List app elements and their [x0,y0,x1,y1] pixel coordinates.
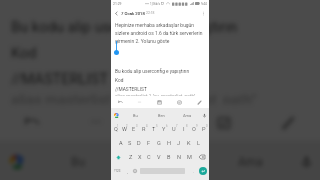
button[interactable]: Draw [189,96,209,108]
staticText: P [202,126,206,133]
button[interactable]: Save [149,96,169,108]
staticText: A [119,140,123,147]
staticText: U [172,126,176,133]
staticText: Kod [11,44,37,61]
staticText: 8 [186,125,188,128]
staticText: Ama [238,155,263,169]
button[interactable]: Ben [148,108,174,122]
staticText: O [192,126,196,133]
button[interactable]: Checklist [169,96,189,108]
staticText: 7 Ocak 2018 [121,11,145,16]
staticText: 0 [206,125,208,128]
staticText: Bu [133,113,138,118]
button[interactable]: Emoji [131,164,139,178]
button[interactable]: Voice input [200,108,209,122]
button[interactable]: W [120,122,129,136]
button[interactable]: Backspace [194,150,209,164]
staticText: //MASTERLIST [115,87,147,93]
button[interactable]: R [139,122,149,136]
staticText: N [177,154,181,161]
staticText: T [152,126,156,133]
staticText: Bu kodu alip userconfig e yapıştırın [11,18,238,35]
staticText: 3 [136,125,138,128]
button[interactable]: N [174,150,184,164]
button[interactable]: More options [199,9,208,18]
button[interactable]: L [194,136,204,150]
staticText: Bu kodu alip userconfig e yapıştırın [115,69,190,75]
button[interactable]: P [199,122,209,136]
staticText: X [138,154,142,161]
button[interactable]: C [144,150,154,164]
button[interactable]: Bu [122,108,148,122]
staticText: Ama [183,113,192,118]
staticText: H [167,140,171,147]
button[interactable]: Q [111,122,120,136]
staticText: K [187,140,191,147]
button[interactable]: Bu [34,141,121,180]
button[interactable]: Ben [121,141,207,180]
staticText: 22:18 [146,11,155,15]
button[interactable]: S [125,136,134,150]
button[interactable]: ?123 [111,164,123,178]
staticText: C [147,154,151,161]
button[interactable]: Undo [111,96,130,108]
staticText: R [142,126,146,133]
button[interactable]: J [174,136,184,150]
button[interactable]: M [184,150,194,164]
staticText: alias masterlist 1 "sv_masterlist_path" [115,94,196,96]
button[interactable]: V [154,150,164,164]
button[interactable]: Voice input [293,141,320,180]
button[interactable]: H [164,136,174,150]
button[interactable]: Ama [207,141,293,180]
button[interactable]: B [164,150,174,164]
staticText: M [187,154,192,161]
staticText: 5 [156,125,158,128]
button[interactable]: D [134,136,144,150]
button[interactable]: X [135,150,144,164]
staticText: ?123 [114,169,121,173]
staticText: I [183,126,185,133]
button[interactable]: E [129,122,139,136]
staticText: 1,06k/s [150,2,160,6]
staticText: 9 [196,125,198,128]
staticText: F [147,140,151,147]
button[interactable]: F [144,136,154,150]
staticText: Kod [115,78,124,84]
staticText: B [167,154,171,161]
button[interactable]: Back [112,9,120,17]
button[interactable]: Y [159,122,169,136]
button[interactable]: , [123,164,131,178]
staticText: Bu [71,155,85,169]
button[interactable]: Checklist [192,104,256,141]
button[interactable]: Redo [64,104,128,141]
button[interactable]: U [169,122,179,136]
staticText: Hepinize merhaba arkadaşlar bugün sizler… [115,22,203,44]
staticText: W [122,126,127,133]
button[interactable]: G [154,136,164,150]
staticText: Z [129,154,133,161]
staticText: 4 [146,125,148,128]
button[interactable]: T [149,122,159,136]
button[interactable]: Z [126,150,135,164]
button[interactable]: O [189,122,199,136]
button[interactable]: Shift [111,150,126,164]
staticText: Ben [158,113,165,118]
staticText: 7 [176,125,178,128]
button[interactable]: I [179,122,189,136]
staticText: S [128,140,132,147]
staticText: //MASTERLIST [11,70,108,87]
staticText: 6 [166,125,168,128]
staticText: 21:29 [113,2,122,6]
button[interactable]: K [184,136,194,150]
button[interactable]: Ama [174,108,200,122]
button[interactable]: Google [0,141,34,180]
button[interactable]: Google [111,108,122,122]
button[interactable]: A [116,136,125,150]
button[interactable]: Save [128,104,192,141]
button[interactable]: Enter [197,164,209,178]
